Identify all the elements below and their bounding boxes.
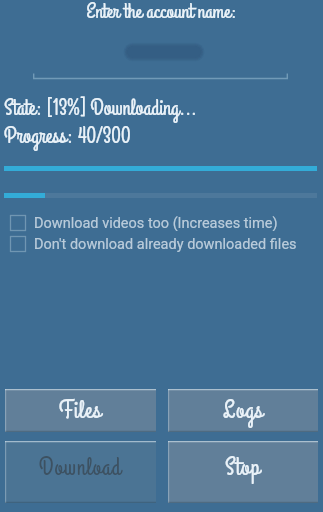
staticText: Progress: 40/300 (4, 121, 131, 151)
button[interactable]: Stop (168, 441, 318, 503)
button[interactable]: Logs (168, 389, 318, 432)
staticText: Download (39, 451, 122, 484)
staticText: Files (59, 394, 102, 427)
button[interactable]: Don't download already downloaded files (10, 236, 297, 252)
staticText: Logs (223, 394, 264, 427)
button[interactable]: Download (5, 441, 156, 503)
button[interactable]: Files (5, 389, 156, 432)
staticText: Download videos too (Increases time) (34, 215, 278, 231)
staticText: Enter the account name: (0, 0, 323, 26)
staticText: Don't download already downloaded files (34, 236, 297, 252)
button[interactable]: Download videos too (Increases time) (10, 215, 278, 231)
staticText: Stop (225, 451, 261, 484)
staticText: State: [13%] Downloading... (4, 93, 197, 123)
